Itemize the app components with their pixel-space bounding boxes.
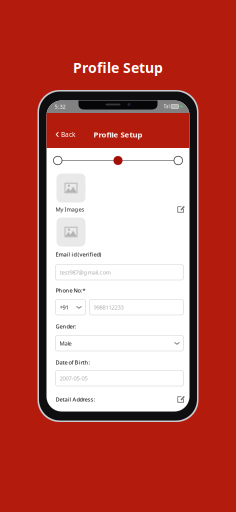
button[interactable]: Edit images [176, 204, 185, 214]
staticText: 9988112233 [93, 303, 123, 311]
button[interactable]: Add image [56, 173, 85, 202]
staticText: Gender: [55, 322, 76, 330]
staticText: Email id (verified) [55, 250, 101, 258]
staticText: My Images [55, 205, 84, 213]
staticText: +91 [59, 303, 68, 311]
staticText: 5:32 [54, 103, 65, 110]
staticText: Profile Setup [73, 58, 163, 77]
staticText: test987@gmail.com [59, 268, 110, 276]
staticText: Date of Birth: [55, 358, 90, 366]
staticText: Tal [164, 103, 170, 110]
button[interactable]: Male [55, 335, 183, 351]
staticText: Phone No:* [55, 286, 85, 294]
staticText: 2007-05-05 [59, 374, 87, 382]
button[interactable]: Country code [55, 299, 85, 315]
button[interactable]: Add image [56, 217, 85, 246]
staticText: Back [61, 130, 75, 139]
button[interactable]: Edit detail address [176, 394, 185, 404]
staticText: Male [59, 339, 71, 347]
staticText: Detail Address: [55, 395, 95, 403]
button[interactable]: 2007-05-05 [55, 370, 183, 386]
staticText: Profile Setup [93, 129, 142, 140]
button[interactable]: Back [46, 127, 81, 142]
